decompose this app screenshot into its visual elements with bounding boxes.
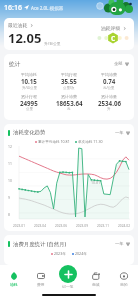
staticText: 9: [8, 195, 10, 200]
staticText: 元/公里: [103, 85, 115, 90]
staticText: 18653.64: [56, 99, 83, 107]
button[interactable]: 费用: [27, 265, 54, 293]
staticText: 油耗评级: [101, 25, 121, 31]
staticText: Ace 2.0L 模拟器: [31, 5, 64, 11]
staticText: 升: [107, 107, 111, 111]
staticText: 元: [67, 107, 71, 111]
staticText: 油耗: [10, 282, 18, 287]
staticText: 2534.06: [98, 99, 121, 107]
staticText: 平均油耗: [21, 72, 37, 77]
staticText: 全部: [114, 61, 123, 66]
staticText: 一年: [115, 130, 124, 135]
button[interactable]: 我的: [110, 265, 138, 293]
button[interactable]: 商城: [82, 265, 110, 293]
staticText: 一年: [115, 241, 124, 246]
staticText: 11: [8, 161, 12, 166]
staticText: 我的: [120, 282, 128, 287]
button[interactable]: 一年: [115, 241, 130, 246]
staticText: 记一笔: [62, 284, 74, 289]
staticText: 统计: [9, 60, 21, 67]
staticText: 8: [8, 212, 10, 217]
staticText: 单次油耗 11.30: [78, 139, 103, 144]
button[interactable]: 一年: [115, 130, 130, 135]
staticText: 2024-02: [118, 224, 130, 228]
staticText: 2023年: [54, 251, 66, 256]
staticText: 2023-09: [76, 224, 88, 228]
button[interactable]: 油耗: [0, 265, 27, 293]
staticText: 累计平均油耗 10.81: [38, 139, 70, 144]
staticText: 2023-06: [55, 224, 67, 228]
staticText: 累计油量: [101, 94, 117, 99]
staticText: 费用: [37, 282, 45, 287]
staticText: 累计行程: [21, 94, 37, 99]
staticText: 0.74: [103, 77, 116, 85]
staticText: 2023-01: [13, 224, 25, 228]
staticText: 12: [8, 144, 12, 149]
staticText: 2024年: [75, 251, 87, 256]
staticText: 平均油费: [101, 72, 117, 77]
button[interactable]: 油耗评级: [96, 25, 130, 44]
staticText: 2023-11: [97, 224, 109, 228]
staticText: 2023-04: [34, 224, 46, 228]
staticText: 24995: [20, 99, 38, 107]
staticText: 升/百公里: [22, 85, 37, 90]
staticText: 油耗变化趋势: [13, 129, 46, 136]
staticText: C: [111, 34, 116, 43]
button[interactable]: 最近油耗: [8, 22, 61, 47]
staticText: 10.81: [91, 180, 101, 185]
staticText: 商城: [92, 282, 100, 287]
staticText: 10.15: [21, 77, 37, 85]
staticText: 平均行程: [61, 72, 77, 77]
staticText: 最近油耗: [8, 22, 28, 28]
button[interactable]: 全部: [114, 61, 129, 66]
staticText: 升/百公里: [44, 41, 61, 46]
staticText: 油费月度统计 (自然月): [13, 240, 67, 247]
staticText: 10: [8, 178, 12, 183]
staticText: 12.05: [8, 29, 42, 47]
staticText: 累计油费: [61, 94, 77, 99]
staticText: 35.55: [61, 77, 77, 85]
staticText: 16:16: [4, 3, 22, 13]
staticText: 公里/次: [63, 85, 75, 90]
button[interactable]: 记一笔: [59, 265, 77, 283]
staticText: 公里: [26, 107, 33, 111]
